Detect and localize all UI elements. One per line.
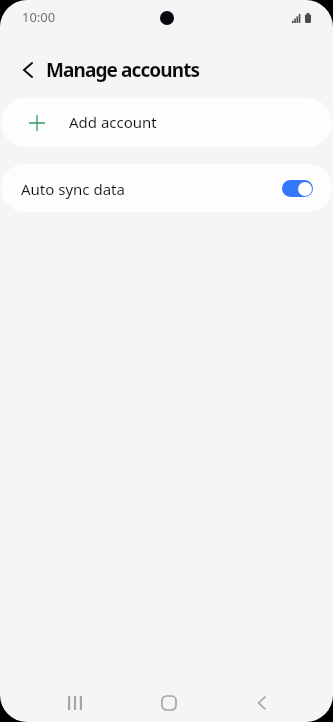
button[interactable]: Recent apps <box>51 679 98 722</box>
staticText: 10:00 <box>22 8 56 26</box>
button[interactable]: Auto sync data <box>1 164 332 212</box>
button[interactable]: Back <box>12 54 44 86</box>
staticText: Auto sync data <box>21 179 125 199</box>
button[interactable]: Add account <box>1 98 332 147</box>
button[interactable]: Home <box>144 679 191 722</box>
button[interactable]: Back <box>238 679 285 722</box>
staticText: Manage accounts <box>46 57 200 83</box>
button[interactable]: Auto sync data <box>282 180 313 197</box>
staticText: Add account <box>69 112 157 132</box>
